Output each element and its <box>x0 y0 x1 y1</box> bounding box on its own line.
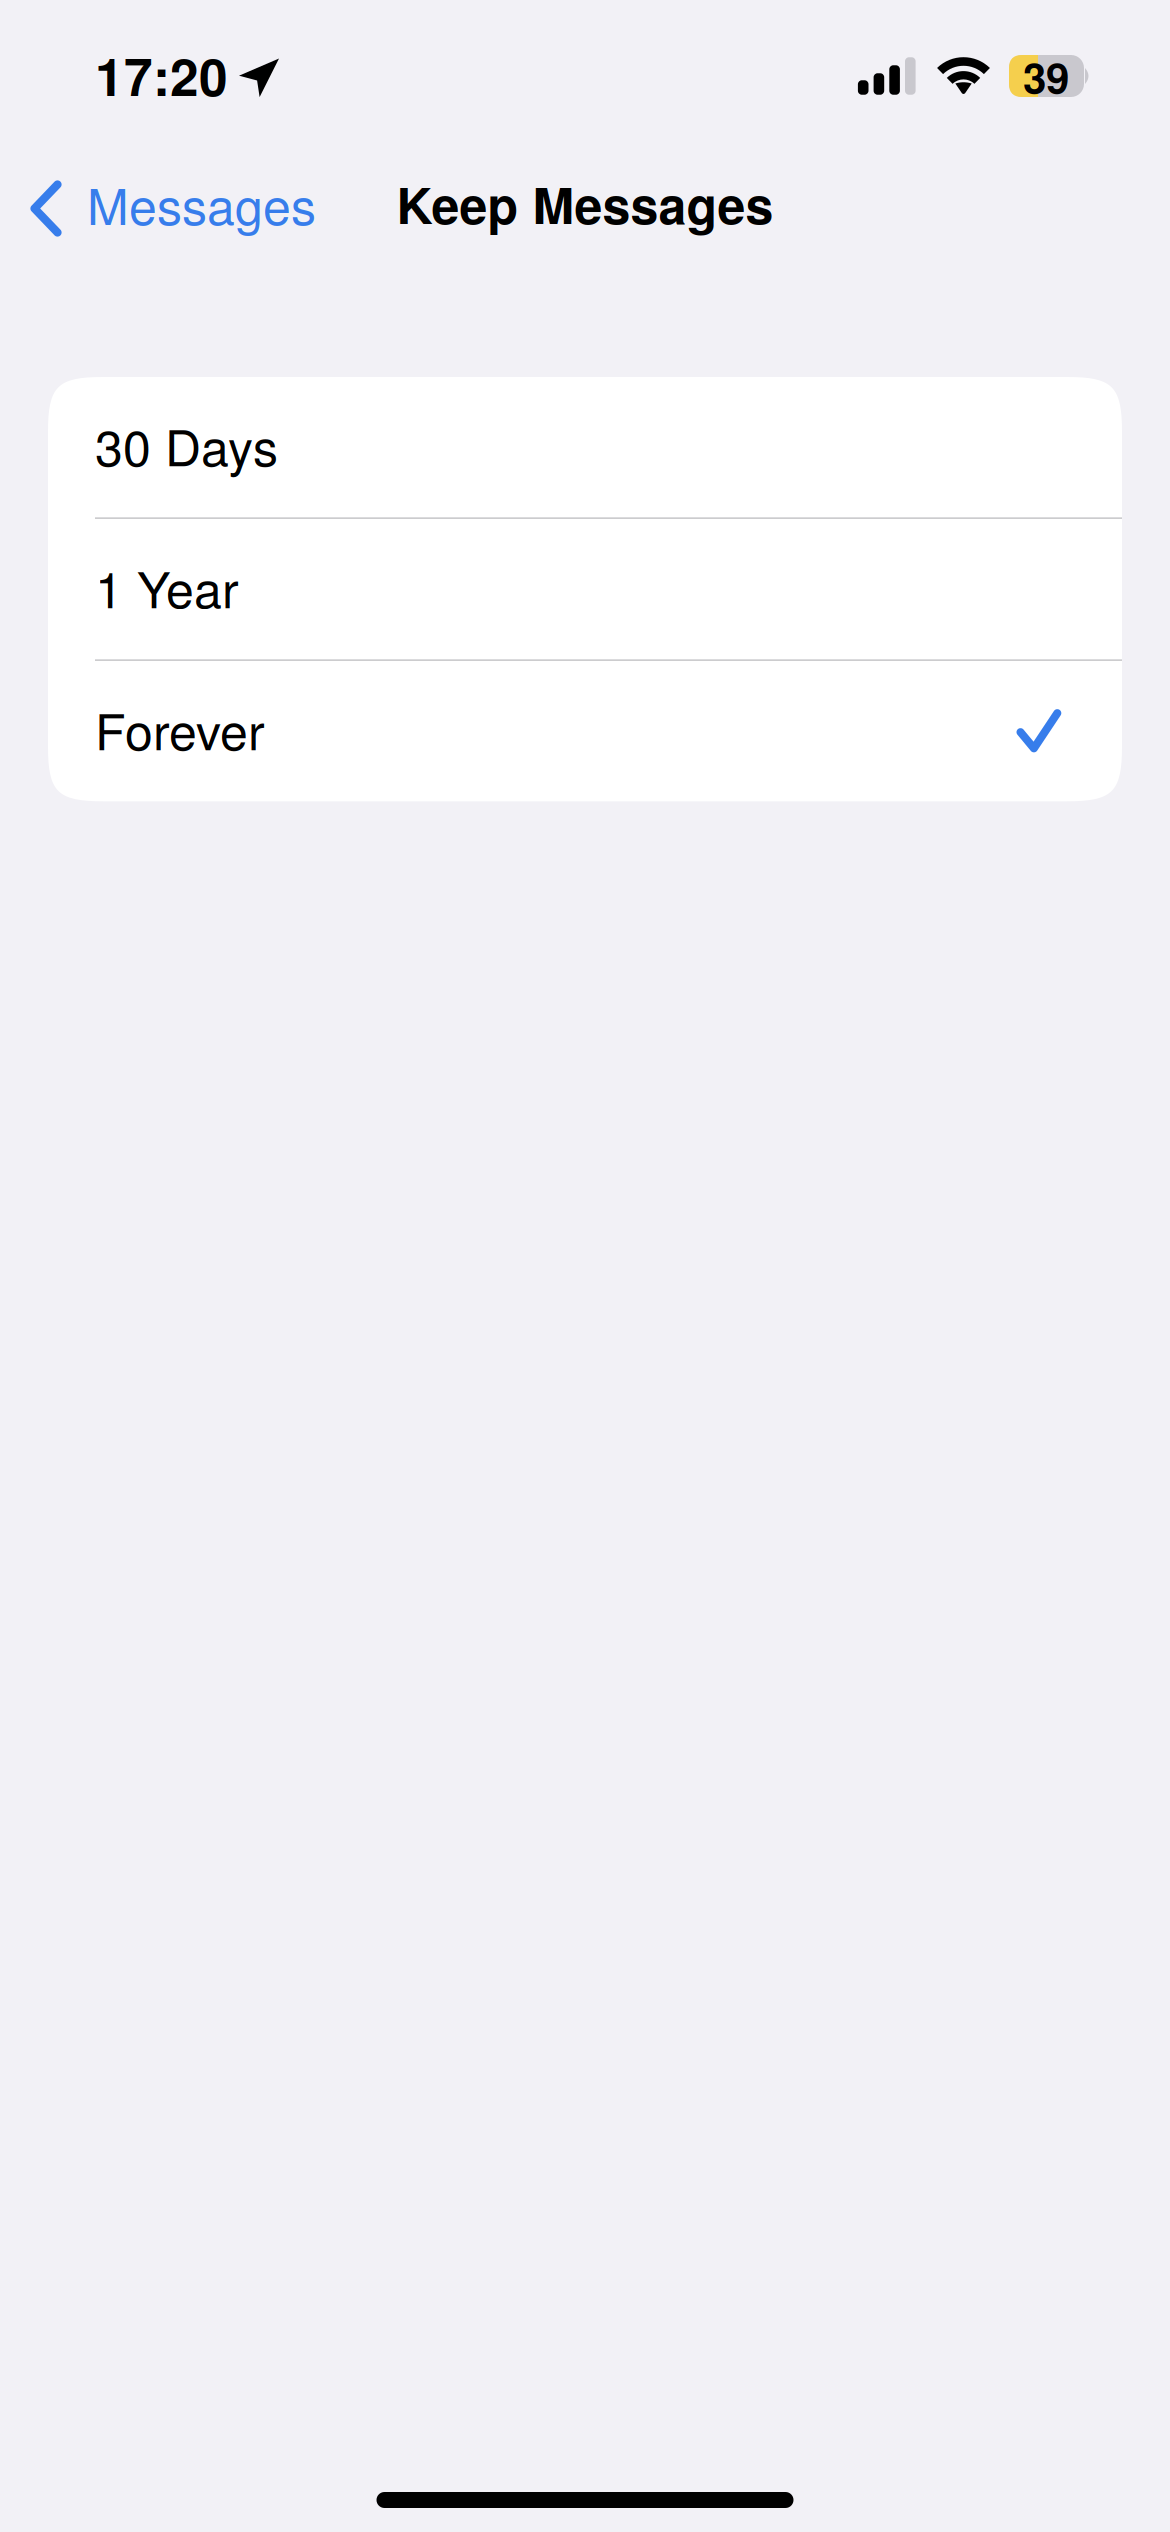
button[interactable]: Forever <box>48 661 1122 801</box>
button[interactable]: 1 Year <box>48 519 1122 659</box>
staticText: Forever <box>95 693 265 764</box>
button[interactable]: 30 Days <box>48 377 1122 517</box>
staticText: 1 Year <box>95 551 239 622</box>
staticText: 17:20 <box>95 38 228 112</box>
staticText: Messages <box>87 168 316 239</box>
staticText: Keep Messages <box>396 168 773 239</box>
staticText: 30 Days <box>95 409 278 480</box>
staticText: 39 <box>1023 46 1069 106</box>
button[interactable]: Back to Messages <box>0 141 336 273</box>
